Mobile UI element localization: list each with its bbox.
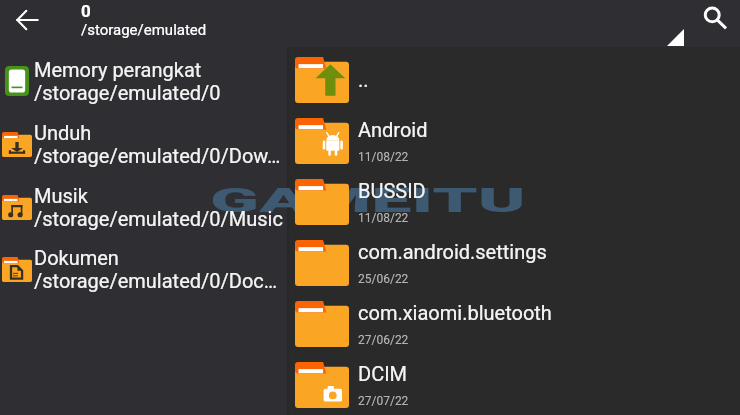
button[interactable]: Android xyxy=(289,110,740,171)
staticText: .. xyxy=(358,68,369,91)
button[interactable]: Dokumen xyxy=(0,238,287,300)
staticText: com.xiaomi.bluetooth xyxy=(358,301,552,324)
staticText: 27/07/22 xyxy=(358,394,409,408)
button[interactable]: Unduh xyxy=(0,113,287,175)
button[interactable]: Musik xyxy=(0,176,287,238)
staticText: /storage/emulated xyxy=(81,21,207,39)
button[interactable]: Search xyxy=(693,0,737,40)
staticText: 0 xyxy=(81,1,91,21)
staticText: 27/06/22 xyxy=(358,333,409,347)
staticText: /storage/emulated/0/Doc… xyxy=(34,269,278,292)
button[interactable]: BUSSID xyxy=(289,171,740,232)
staticText: /storage/emulated/0/Music xyxy=(34,207,283,230)
staticText: Unduh xyxy=(34,121,92,144)
staticText: com.android.settings xyxy=(358,240,547,263)
button[interactable]: .. xyxy=(289,49,740,110)
staticText: DCIM xyxy=(358,362,408,385)
staticText: 25/06/22 xyxy=(358,272,409,286)
staticText: Android xyxy=(358,118,428,141)
button[interactable]: com.xiaomi.bluetooth xyxy=(289,293,740,354)
button[interactable]: com.android.settings xyxy=(289,232,740,293)
staticText: 11/08/22 xyxy=(358,150,409,164)
button[interactable]: Back xyxy=(3,0,51,43)
staticText: /storage/emulated/0 xyxy=(34,81,221,104)
staticText: Memory perangkat xyxy=(34,58,202,81)
button[interactable]: DCIM xyxy=(289,354,740,415)
staticText: /storage/emulated/0/Dow… xyxy=(34,144,281,167)
button[interactable]: Memory perangkat xyxy=(0,50,287,112)
staticText: BUSSID xyxy=(358,179,426,202)
staticText: Dokumen xyxy=(34,246,119,269)
staticText: Musik xyxy=(34,184,88,207)
staticText: GAMEITU xyxy=(210,181,527,220)
staticText: 11/08/22 xyxy=(358,211,409,225)
